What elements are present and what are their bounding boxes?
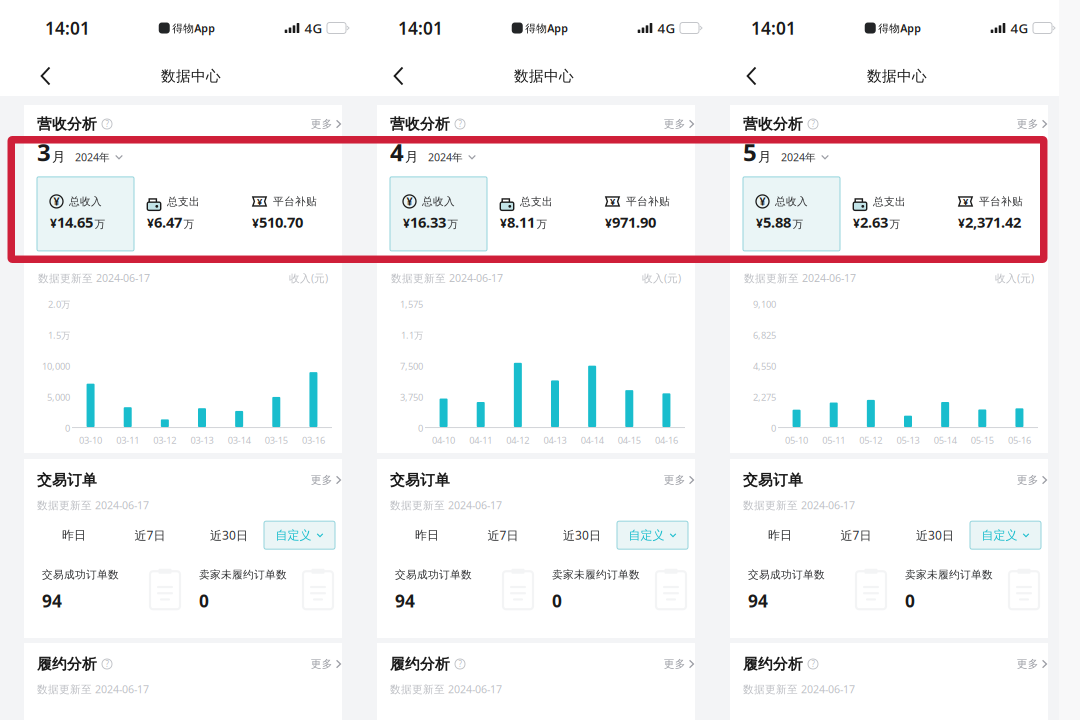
staticText: 自定义: [275, 528, 311, 542]
button[interactable]: 更多: [311, 117, 341, 131]
staticText: 5,000: [47, 391, 70, 403]
button[interactable]: 自定义: [617, 521, 688, 549]
staticText: ¥: [147, 215, 154, 231]
staticText: 万: [889, 218, 900, 231]
button[interactable]: 昨日: [42, 521, 106, 549]
staticText: 更多: [664, 657, 686, 671]
button[interactable]: 近30日: [900, 521, 970, 549]
staticText: 数据更新至 2024-06-17: [391, 271, 503, 285]
staticText: ?: [458, 659, 461, 669]
button[interactable]: 2024年: [65, 150, 123, 164]
button[interactable]: 近30日: [194, 521, 264, 549]
staticText: ¥: [605, 215, 612, 231]
staticText: 履约分析: [743, 655, 803, 673]
button[interactable]: 更多: [664, 117, 694, 131]
staticText: 平台补贴: [979, 195, 1023, 208]
staticText: 更多: [1017, 473, 1039, 487]
button[interactable]: 更多: [1017, 657, 1047, 671]
staticText: 04-10: [432, 434, 455, 446]
staticText: 总收入: [69, 195, 102, 208]
button[interactable]: 更多: [1017, 117, 1047, 131]
button[interactable]: 2024年: [771, 150, 829, 164]
staticText: 2.0万: [48, 298, 70, 310]
button[interactable]: ¥: [390, 177, 487, 251]
staticText: ?: [105, 119, 108, 129]
staticText: 05-10: [785, 434, 808, 446]
staticText: 14:01: [45, 16, 90, 39]
staticText: 得物App: [172, 21, 215, 35]
staticText: 收入(元): [289, 271, 328, 285]
staticText: 05-11: [822, 434, 845, 446]
button[interactable]: 更多: [664, 473, 694, 487]
staticText: 营收分析: [743, 115, 803, 133]
button[interactable]: 更多: [311, 473, 341, 487]
staticText: 4G: [304, 19, 322, 37]
staticText: 卖家未履约订单数: [905, 568, 993, 581]
staticText: 1.1万: [401, 329, 423, 341]
staticText: 营收分析: [390, 115, 450, 133]
staticText: 94: [42, 589, 62, 612]
staticText: 昨日: [415, 528, 439, 542]
staticText: 94: [748, 589, 768, 612]
staticText: 03-13: [190, 434, 213, 446]
button[interactable]: Back: [706, 58, 771, 93]
staticText: 更多: [311, 473, 333, 487]
staticText: 得物App: [525, 21, 568, 35]
staticText: 平台补贴: [273, 195, 317, 208]
staticText: ¥: [500, 215, 507, 231]
button[interactable]: 近30日: [547, 521, 617, 549]
staticText: 16.33: [410, 212, 446, 232]
button[interactable]: 自定义: [264, 521, 335, 549]
staticText: 近7日: [134, 527, 165, 543]
button[interactable]: 昨日: [395, 521, 459, 549]
button[interactable]: ¥: [592, 177, 700, 251]
staticText: 收入(元): [642, 271, 681, 285]
button[interactable]: ¥: [37, 177, 134, 251]
staticText: 0: [418, 422, 423, 434]
button[interactable]: 更多: [664, 657, 694, 671]
button[interactable]: 近7日: [106, 521, 194, 549]
staticText: 近30日: [916, 527, 954, 543]
staticText: 5.88: [763, 212, 791, 232]
button[interactable]: 自定义: [970, 521, 1041, 549]
staticText: 交易成功订单数: [748, 568, 825, 581]
staticText: 5: [743, 136, 757, 168]
staticText: 05-12: [859, 434, 882, 446]
staticText: 总支出: [167, 195, 200, 208]
button[interactable]: 总支出: [134, 177, 239, 251]
button[interactable]: 近7日: [812, 521, 900, 549]
button[interactable]: 总支出: [487, 177, 592, 251]
staticText: ¥: [853, 215, 860, 231]
button[interactable]: ¥: [239, 177, 347, 251]
staticText: 0: [199, 589, 209, 612]
button[interactable]: 更多: [1017, 473, 1047, 487]
staticText: 总支出: [873, 195, 906, 208]
staticText: 履约分析: [390, 655, 450, 673]
button[interactable]: 总支出: [840, 177, 945, 251]
button[interactable]: ¥: [743, 177, 840, 251]
staticText: 总收入: [775, 195, 808, 208]
staticText: 4G: [1010, 19, 1028, 37]
staticText: 7,500: [400, 360, 423, 372]
staticText: 4: [390, 136, 404, 168]
staticText: 03-15: [265, 434, 288, 446]
staticText: 万: [536, 218, 547, 231]
staticText: 近7日: [487, 527, 518, 543]
staticText: 更多: [311, 117, 333, 131]
staticText: 月: [758, 149, 771, 165]
staticText: 履约分析: [37, 655, 97, 673]
staticText: 94: [395, 589, 415, 612]
button[interactable]: Back: [0, 58, 65, 93]
button[interactable]: 近7日: [459, 521, 547, 549]
staticText: 数据更新至 2024-06-17: [744, 271, 856, 285]
button[interactable]: ¥: [945, 177, 1053, 251]
staticText: 1.5万: [48, 329, 70, 341]
button[interactable]: Back: [353, 58, 418, 93]
staticText: ¥: [406, 194, 412, 209]
button[interactable]: 2024年: [418, 150, 476, 164]
staticText: 交易订单: [743, 471, 803, 489]
staticText: ¥: [257, 195, 262, 208]
button[interactable]: 昨日: [748, 521, 812, 549]
button[interactable]: 更多: [311, 657, 341, 671]
staticText: ¥: [756, 215, 763, 231]
